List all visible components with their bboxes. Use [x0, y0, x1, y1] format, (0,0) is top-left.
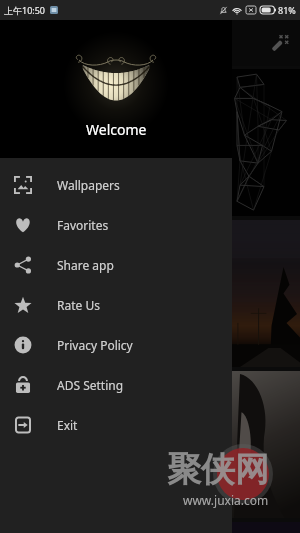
- staticText: www.juxia.com: [183, 492, 269, 508]
- staticText: 聚侠网: [167, 448, 269, 491]
- button[interactable]: Sunset wallpaper: [0, 220, 300, 367]
- button[interactable]: Magic wallpapers: [263, 27, 295, 59]
- button[interactable]: ADS Setting: [0, 365, 232, 405]
- staticText: Privacy Policy: [57, 337, 133, 353]
- button[interactable]: Rate Us: [0, 285, 232, 325]
- button[interactable]: Favorites: [0, 205, 232, 245]
- button[interactable]: Wallpapers: [0, 165, 232, 205]
- button[interactable]: Share app: [0, 245, 232, 285]
- staticText: Rate Us: [57, 297, 100, 313]
- button[interactable]: Privacy Policy: [0, 325, 232, 365]
- button[interactable]: Exit: [0, 405, 232, 445]
- staticText: 上午10:50: [4, 4, 46, 16]
- staticText: 81%: [278, 4, 296, 16]
- staticText: Favorites: [57, 217, 109, 233]
- button[interactable]: Dark wallpaper: [0, 371, 300, 518]
- staticText: ADS Setting: [57, 377, 124, 393]
- staticText: Wallpapers: [57, 177, 120, 193]
- button[interactable]: [0, 522, 300, 533]
- button[interactable]: Low poly wallpaper: [0, 69, 300, 216]
- staticText: Welcome: [86, 120, 147, 139]
- staticText: Share app: [57, 257, 114, 273]
- staticText: Exit: [57, 417, 78, 433]
